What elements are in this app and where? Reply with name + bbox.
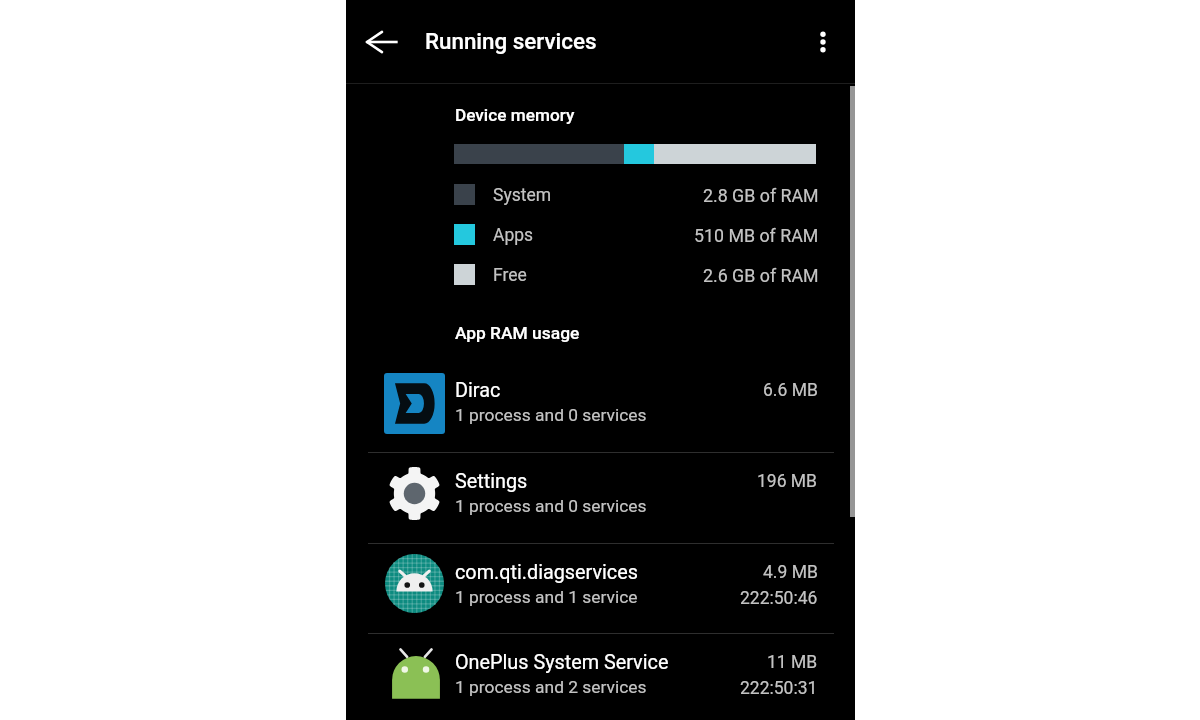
staticText: Device memory xyxy=(455,105,575,125)
staticText: App RAM usage xyxy=(455,323,580,343)
button[interactable]: com.qti.diagservices xyxy=(346,544,855,634)
staticText: Apps xyxy=(493,225,534,246)
staticText: 1 process and 0 services xyxy=(455,496,647,516)
button[interactable]: Settings xyxy=(346,453,855,543)
staticText: 4.9 MB xyxy=(763,562,818,583)
staticText: 1 process and 0 services xyxy=(455,405,647,425)
staticText: 1 process and 2 services xyxy=(455,677,647,697)
button[interactable]: OnePlus System Service xyxy=(346,634,855,720)
button[interactable]: System xyxy=(446,178,824,211)
staticText: 196 MB xyxy=(757,471,818,492)
staticText: 222:50:46 xyxy=(740,588,818,609)
staticText: 2.8 GB of RAM xyxy=(703,185,819,206)
button[interactable]: More options xyxy=(799,18,847,66)
staticText: 2.6 GB of RAM xyxy=(703,265,819,286)
staticText: Free xyxy=(493,265,527,286)
staticText: 222:50:31 xyxy=(740,678,818,699)
staticText: com.qti.diagservices xyxy=(455,561,638,584)
staticText: Settings xyxy=(455,470,528,493)
staticText: Dirac xyxy=(455,379,501,402)
button[interactable]: Free xyxy=(446,258,824,291)
staticText: 510 MB of RAM xyxy=(694,225,819,246)
staticText: OnePlus System Service xyxy=(455,651,669,674)
staticText: 11 MB xyxy=(767,652,818,673)
button[interactable]: Apps xyxy=(446,218,824,251)
staticText: Running services xyxy=(425,28,597,54)
staticText: System xyxy=(493,185,552,206)
button[interactable]: Back xyxy=(354,14,410,70)
staticText: 1 process and 1 service xyxy=(455,587,638,607)
staticText: 6.6 MB xyxy=(763,380,818,401)
button[interactable]: Dirac xyxy=(346,362,855,452)
